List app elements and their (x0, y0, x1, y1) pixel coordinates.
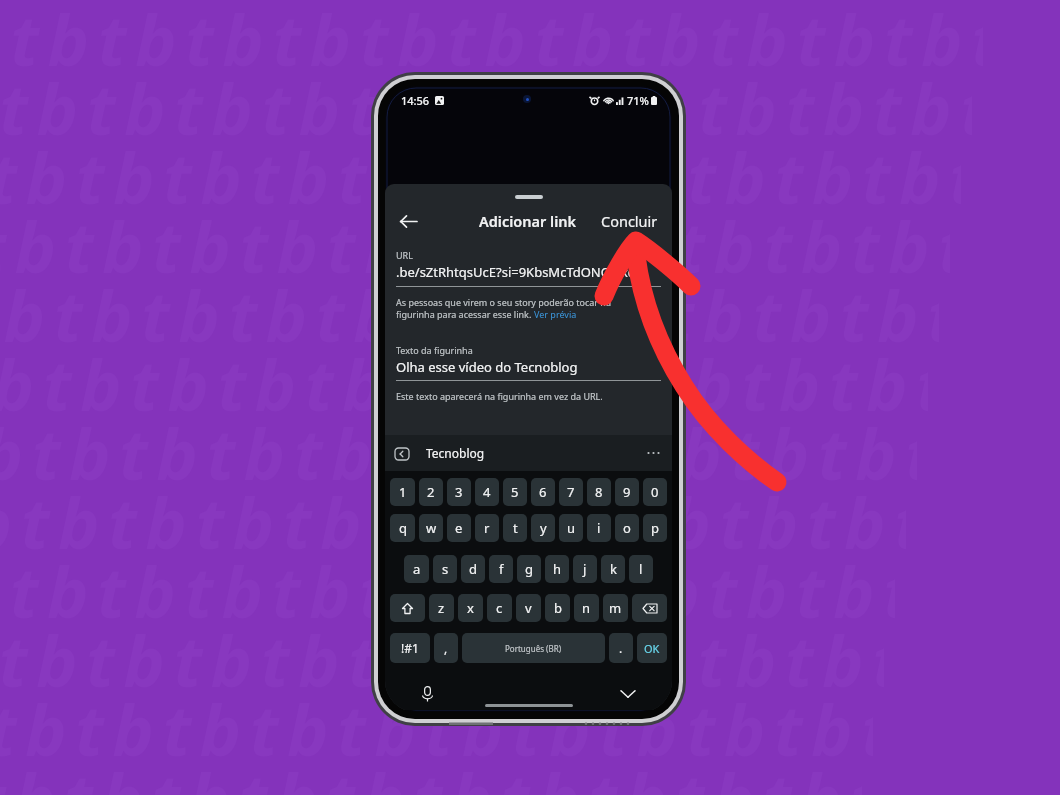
button[interactable]: r (475, 514, 499, 542)
staticText: Ver prévia (534, 308, 577, 320)
button[interactable]: u (559, 514, 583, 542)
staticText: OK (644, 641, 660, 656)
staticText: 6 (539, 483, 547, 501)
staticText: Tecnoblog (426, 445, 485, 461)
staticText: 71% (627, 93, 649, 108)
staticText: i (597, 519, 601, 537)
staticText: !#1 (401, 640, 419, 656)
staticText: 1 (399, 483, 407, 501)
staticText: e (455, 519, 463, 537)
button[interactable]: b (545, 594, 570, 622)
staticText: z (438, 599, 445, 617)
staticText: p (651, 519, 659, 537)
staticText: Português (BR) (505, 643, 562, 654)
button[interactable]: Mais opções (647, 451, 660, 455)
staticText: n (582, 599, 591, 617)
staticText: . (619, 640, 623, 656)
staticText: Este texto aparecerá na figurinha em vez… (396, 390, 603, 402)
button[interactable]: e (447, 514, 471, 542)
staticText: Adicionar link (479, 211, 577, 231)
button[interactable]: s (433, 555, 457, 583)
staticText: tbtbtbtbtbtbtbtbtbtbtbtbtbtbtbtbtbtbtbtb (0, 267, 939, 362)
staticText: g (525, 560, 533, 578)
button[interactable]: k (601, 555, 625, 583)
staticText: l (639, 560, 643, 578)
button[interactable]: 5 (503, 478, 527, 506)
staticText: .be/sZtRhtqsUcE?si=9KbsMcTdONQwxq2 (396, 263, 644, 281)
staticText: tbtbtbtbtbtbtbtbtbtbtbtbtbtbtbtbtbtbtbtb (0, 0, 983, 86)
button[interactable]: m (603, 594, 628, 622)
staticText: 7 (567, 483, 575, 501)
button[interactable]: 0 (643, 478, 667, 506)
button[interactable]: 4 (475, 478, 499, 506)
staticText: 5 (511, 483, 519, 501)
button[interactable]: z (429, 594, 454, 622)
button[interactable]: p (643, 514, 667, 542)
staticText: tbtbtbtbtbtbtbtbtbtbtbtbtbtbtbtbtbtbtbtb (0, 474, 906, 569)
staticText: k (610, 560, 617, 578)
button[interactable]: 1 (390, 478, 415, 506)
staticText: y (540, 519, 547, 537)
button[interactable]: x (458, 594, 483, 622)
staticText: j (583, 560, 587, 578)
staticText: r (484, 519, 490, 537)
button[interactable]: Microfone (415, 682, 439, 706)
staticText: t (513, 519, 518, 537)
staticText: o (623, 519, 631, 537)
button[interactable]: Área de transferência (394, 447, 409, 460)
button[interactable]: t (503, 514, 527, 542)
button[interactable]: y (531, 514, 555, 542)
button[interactable]: f (489, 555, 513, 583)
button[interactable]: 7 (559, 478, 583, 506)
staticText: m (609, 599, 622, 617)
button[interactable]: j (573, 555, 597, 583)
button[interactable]: , (434, 633, 458, 663)
staticText: tbtbtbtbtbtbtbtbtbtbtbtbtbtbtbtbtbtbtbtb (0, 612, 884, 707)
staticText: w (426, 519, 437, 537)
button[interactable]: Português (BR) (462, 633, 605, 663)
button[interactable]: Ver prévia (534, 308, 577, 320)
button[interactable]: o (615, 514, 639, 542)
button[interactable]: v (516, 594, 541, 622)
button[interactable]: 8 (587, 478, 611, 506)
staticText: u (567, 519, 576, 537)
button[interactable]: Fechar teclado (617, 683, 639, 705)
staticText: 9 (623, 483, 631, 501)
button[interactable]: q (390, 514, 415, 542)
button[interactable]: !#1 (390, 633, 430, 663)
button[interactable]: OK (637, 633, 667, 663)
staticText: tbtbtbtbtbtbtbtbtbtbtbtbtbtbtbtbtbtbtbtb (0, 336, 928, 431)
button[interactable]: i (587, 514, 611, 542)
button[interactable]: 3 (447, 478, 471, 506)
staticText: b (554, 599, 562, 617)
button[interactable]: h (545, 555, 569, 583)
button[interactable]: . (609, 633, 633, 663)
button[interactable]: a (404, 555, 429, 583)
staticText: 3 (455, 483, 463, 501)
staticText: 8 (595, 483, 603, 501)
button[interactable]: Apagar (632, 594, 667, 622)
button[interactable]: n (574, 594, 599, 622)
button[interactable]: Voltar (395, 208, 421, 234)
staticText: c (496, 599, 503, 617)
button[interactable]: l (629, 555, 653, 583)
staticText: tbtbtbtbtbtbtbtbtbtbtbtbtbtbtbtbtbtbtbtb (0, 198, 950, 293)
button[interactable]: c (487, 594, 512, 622)
button[interactable]: 9 (615, 478, 639, 506)
button[interactable]: w (419, 514, 443, 542)
staticText: 0 (651, 483, 659, 501)
staticText: As pessoas que virem o seu story poderão… (396, 296, 611, 308)
button[interactable]: 6 (531, 478, 555, 506)
staticText: 2 (427, 483, 435, 501)
staticText: tbtbtbtbtbtbtbtbtbtbtbtbtbtbtbtbtbtbtbtb (0, 129, 961, 224)
staticText: , (444, 640, 448, 656)
button[interactable]: Concluir (595, 207, 664, 235)
button[interactable]: g (517, 555, 541, 583)
button[interactable]: 2 (419, 478, 443, 506)
button[interactable]: Shift (390, 594, 425, 622)
staticText: URL (396, 249, 413, 261)
button[interactable]: d (461, 555, 485, 583)
staticText: tbtbtbtbtbtbtbtbtbtbtbtbtbtbtbtbtbtbtbtb (0, 681, 873, 776)
